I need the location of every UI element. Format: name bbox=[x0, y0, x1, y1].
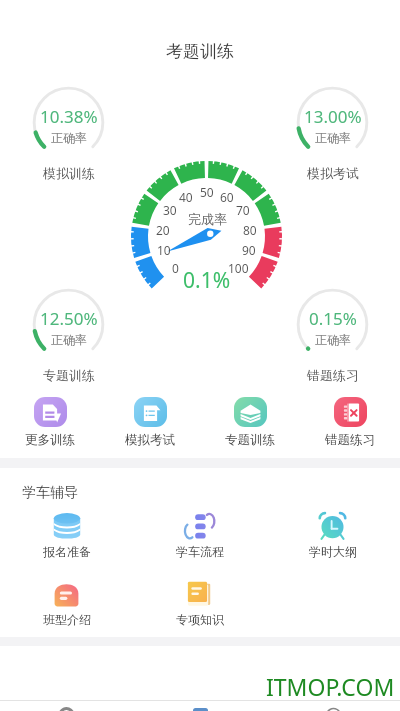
staticText: 70 bbox=[236, 202, 250, 218]
staticText: 0 bbox=[172, 260, 179, 276]
staticText: 学车流程 bbox=[176, 544, 224, 559]
staticText: 报名准备 bbox=[43, 544, 91, 559]
button[interactable]: 12.50% bbox=[26, 287, 111, 383]
staticText: 12.50% bbox=[40, 307, 98, 330]
staticText: 学时大纲 bbox=[309, 544, 357, 559]
staticText: 40 bbox=[179, 189, 193, 205]
button[interactable]: 0.15% bbox=[290, 287, 375, 383]
staticText: 专项知识 bbox=[176, 612, 224, 627]
staticText: 考题训练 bbox=[166, 41, 234, 62]
button[interactable]: 更多训练 bbox=[0, 397, 100, 448]
staticText: 90 bbox=[242, 242, 256, 258]
staticText: 0.1% bbox=[183, 266, 231, 295]
staticText: 100 bbox=[228, 260, 249, 276]
button[interactable]: 模拟考试 bbox=[100, 397, 200, 448]
button[interactable]: 错题练习 bbox=[300, 397, 400, 448]
staticText: 0.15% bbox=[309, 307, 357, 330]
staticText: 学车辅导 bbox=[22, 484, 78, 502]
button[interactable]: 我的 bbox=[267, 700, 400, 711]
button[interactable]: 班型介绍 bbox=[0, 580, 133, 627]
staticText: 正确率 bbox=[315, 130, 351, 145]
staticText: 模拟训练 bbox=[43, 165, 95, 181]
staticText: 10 bbox=[157, 242, 171, 258]
staticText: 专题训练 bbox=[43, 367, 95, 383]
staticText: 错题练习 bbox=[307, 367, 359, 383]
button[interactable]: 首页 bbox=[0, 700, 133, 711]
staticText: 模拟考试 bbox=[307, 165, 359, 181]
staticText: 13.00% bbox=[304, 105, 362, 128]
staticText: 正确率 bbox=[51, 130, 87, 145]
staticText: 错题练习 bbox=[325, 432, 375, 448]
staticText: ITMOP.COM bbox=[266, 671, 395, 702]
staticText: 完成率 bbox=[188, 211, 227, 227]
staticText: 50 bbox=[200, 184, 214, 200]
staticText: 20 bbox=[156, 222, 170, 238]
button[interactable]: 专项知识 bbox=[133, 580, 266, 627]
staticText: 60 bbox=[220, 189, 234, 205]
button[interactable]: 报名准备 bbox=[0, 512, 133, 559]
staticText: 10.38% bbox=[40, 105, 98, 128]
button[interactable]: 10.38% bbox=[26, 85, 111, 181]
button[interactable]: 学车流程 bbox=[133, 512, 266, 559]
button[interactable]: 专题训练 bbox=[200, 397, 300, 448]
staticText: 专题训练 bbox=[225, 432, 275, 448]
staticText: 班型介绍 bbox=[43, 612, 91, 627]
staticText: 更多训练 bbox=[25, 432, 75, 448]
staticText: 正确率 bbox=[51, 332, 87, 347]
button[interactable]: 题库 bbox=[134, 700, 267, 711]
staticText: 正确率 bbox=[315, 332, 351, 347]
staticText: 模拟考试 bbox=[125, 432, 175, 448]
staticText: 80 bbox=[243, 222, 257, 238]
button[interactable]: 学时大纲 bbox=[266, 512, 399, 559]
button[interactable]: 13.00% bbox=[290, 85, 375, 181]
staticText: 30 bbox=[163, 202, 177, 218]
